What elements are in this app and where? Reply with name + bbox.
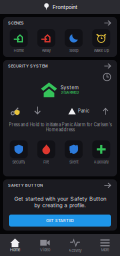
button[interactable]: History [102, 72, 112, 82]
staticText: Press and Hold to initiate a Panic Alarm… [8, 122, 111, 132]
staticText: More [101, 248, 109, 252]
staticText: Activity [68, 248, 81, 253]
button[interactable]: SAFETY BUTTON [3, 179, 117, 191]
staticText: Panic [78, 108, 89, 114]
staticText: SECURITY SYSTEM [8, 64, 48, 68]
button[interactable]: GET STARTED [9, 215, 111, 227]
staticText: SCENES [8, 21, 24, 25]
button[interactable]: Home [0, 238, 30, 252]
button[interactable]: Home [5, 29, 32, 53]
staticText: Auxiliary [94, 160, 109, 164]
button[interactable]: Sleep [60, 29, 87, 53]
staticText: Fire [43, 160, 49, 164]
button[interactable]: Auxiliary [87, 140, 115, 164]
staticText: System [60, 84, 78, 90]
button[interactable]: Panic [68, 107, 89, 115]
staticText: Away [42, 48, 51, 53]
staticText: Home [14, 48, 24, 53]
button[interactable]: User codes [10, 106, 20, 116]
button[interactable]: Wake Up [87, 29, 115, 53]
staticText: Sleep [69, 48, 78, 53]
staticText: Home [10, 248, 20, 252]
button[interactable]: Activity [60, 237, 90, 253]
button[interactable]: Away [32, 29, 60, 53]
staticText: Wake Up [94, 48, 109, 53]
staticText: Silent [69, 160, 78, 164]
button[interactable]: SECURITY SYSTEM [3, 60, 117, 72]
button[interactable]: Fire [32, 140, 60, 164]
button[interactable]: Silent [60, 140, 87, 164]
button[interactable]: Video [30, 238, 60, 252]
button[interactable]: SCENES [3, 17, 117, 29]
button[interactable]: More [90, 238, 120, 252]
staticText: Get started with your Safety Button by c… [14, 195, 106, 209]
button[interactable]: Security [5, 140, 32, 164]
button[interactable]: Collapse [101, 106, 110, 116]
staticText: SAFETY BUTTON [8, 183, 43, 188]
staticText: Video [40, 248, 50, 252]
staticText: DISARMED [60, 90, 79, 94]
button[interactable]: Download [33, 106, 42, 116]
staticText: GET STARTED [46, 218, 74, 223]
staticText: Frontpoint [52, 4, 77, 10]
staticText: Security [12, 160, 25, 164]
